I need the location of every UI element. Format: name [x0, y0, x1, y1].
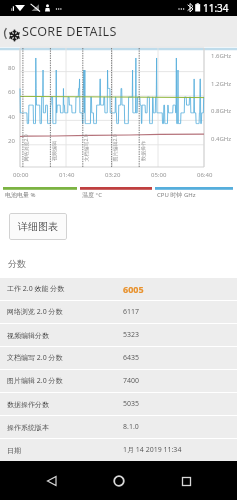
staticText: 工作 2.0 效能 分数	[7, 284, 65, 294]
button[interactable]: 网络浏览 2.0 分数	[0, 301, 237, 323]
button[interactable]: 操作系统版本	[0, 416, 237, 438]
staticText: 11:34	[203, 1, 229, 15]
staticText: 5035	[123, 399, 140, 409]
button[interactable]: SCORE DETAILS	[0, 16, 237, 47]
staticText: 8.1.0	[123, 422, 139, 432]
staticText: 6005	[123, 283, 144, 295]
staticText: 文档编写 2.0 分数	[7, 353, 63, 363]
staticText: 操作系统版本	[7, 423, 49, 432]
button[interactable]: 图片编辑 2.0 分数	[0, 370, 237, 392]
staticText: 温度 °C	[82, 191, 102, 199]
staticText: 1月 14 2019 11:34	[123, 445, 182, 455]
button[interactable]: Recent apps	[169, 464, 203, 498]
staticText: 1.6GHz	[211, 52, 232, 60]
staticText: 图片编辑2.0	[111, 133, 118, 161]
staticText: 网络浏览 2.0 分数	[7, 307, 63, 317]
staticText: 视频编辑	[51, 141, 57, 161]
staticText: 60	[8, 88, 15, 96]
staticText: 00:00	[13, 171, 29, 179]
button[interactable]: 文档编写 2.0 分数	[0, 347, 237, 369]
staticText: 05:00	[151, 171, 167, 179]
staticText: 日期	[7, 446, 21, 455]
staticText: 数据操作	[140, 141, 146, 161]
button[interactable]: 数据操作分数	[0, 393, 237, 415]
staticText: 图片编辑 2.0 分数	[7, 376, 63, 386]
staticText: 视频编辑分数	[7, 331, 49, 340]
staticText: 80	[8, 64, 15, 72]
staticText: 0.4GHz	[211, 135, 232, 143]
button[interactable]: Back	[34, 464, 68, 498]
button[interactable]: 详细图表	[9, 213, 67, 240]
staticText: 6117	[123, 307, 140, 317]
staticText: 7400	[123, 376, 140, 386]
button[interactable]: Back	[0, 27, 8, 40]
staticText: 0.8GHz	[211, 107, 232, 115]
button[interactable]: 视频编辑分数	[0, 324, 237, 346]
staticText: 1.2GHz	[211, 80, 232, 88]
staticText: 20	[8, 137, 15, 145]
staticText: CPU 时钟 GHz	[157, 191, 196, 199]
staticText: 5323	[123, 330, 140, 340]
staticText: 01:40	[59, 171, 75, 179]
staticText: 03:20	[105, 171, 121, 179]
staticText: 网络浏览2.0	[22, 133, 29, 161]
button[interactable]: Home	[102, 464, 136, 498]
staticText: 电池电量 %	[5, 191, 36, 199]
staticText: 文档编写2.0	[82, 133, 89, 161]
staticText: 6435	[123, 353, 140, 363]
staticText: 分数	[8, 258, 26, 269]
staticText: 详细图表	[18, 220, 58, 233]
staticText: 40	[8, 113, 15, 121]
staticText: 06:40	[197, 171, 213, 179]
button[interactable]: 日期	[0, 439, 237, 461]
staticText: 数据操作分数	[7, 400, 49, 409]
staticText: SCORE DETAILS	[22, 23, 117, 40]
button[interactable]: 工作 2.0 效能 分数	[0, 278, 237, 300]
